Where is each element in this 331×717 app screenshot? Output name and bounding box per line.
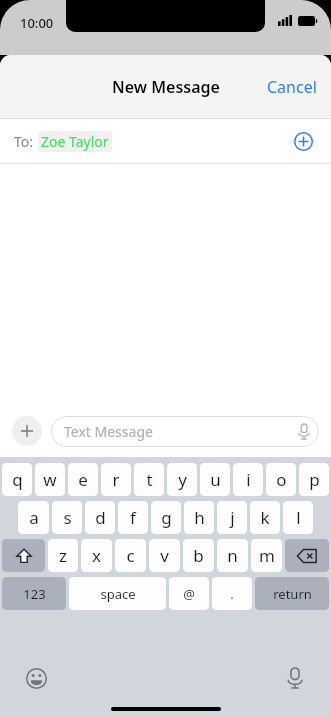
staticText: o: [276, 468, 287, 491]
staticText: l: [296, 506, 301, 529]
button[interactable]: b: [183, 539, 214, 572]
button[interactable]: w: [35, 463, 65, 496]
button[interactable]: Dictation: [279, 662, 311, 694]
button[interactable]: a: [18, 501, 49, 534]
staticText: d: [95, 506, 106, 529]
button[interactable]: Add contact: [289, 127, 317, 155]
staticText: Text Message: [64, 422, 153, 441]
button[interactable]: u: [200, 463, 230, 496]
staticText: Cancel: [267, 76, 317, 98]
staticText: return: [273, 585, 312, 603]
button[interactable]: s: [52, 501, 82, 534]
staticText: t: [146, 468, 153, 491]
staticText: space: [100, 585, 136, 603]
button[interactable]: Shift: [2, 539, 45, 572]
button[interactable]: g: [151, 501, 181, 534]
staticText: h: [194, 506, 205, 529]
staticText: k: [260, 506, 270, 529]
button[interactable]: Emoji: [20, 662, 52, 694]
button[interactable]: To:: [0, 119, 331, 163]
button[interactable]: l: [283, 501, 313, 534]
button[interactable]: 123: [2, 577, 66, 610]
button[interactable]: Backspace: [285, 539, 329, 572]
button[interactable]: t: [134, 463, 164, 496]
button[interactable]: z: [48, 539, 78, 572]
button[interactable]: x: [81, 539, 112, 572]
staticText: @: [183, 585, 195, 603]
button[interactable]: j: [217, 501, 247, 534]
staticText: u: [210, 468, 221, 491]
button[interactable]: h: [184, 501, 214, 534]
button[interactable]: Cancel: [253, 66, 331, 108]
staticText: y: [178, 468, 187, 491]
staticText: a: [29, 506, 39, 529]
button[interactable]: k: [250, 501, 280, 534]
staticText: c: [126, 544, 135, 567]
staticText: Zoe Taylor: [41, 132, 109, 151]
staticText: To:: [14, 132, 34, 151]
button[interactable]: n: [217, 539, 248, 572]
staticText: x: [92, 544, 101, 567]
staticText: q: [12, 468, 23, 491]
button[interactable]: c: [115, 539, 146, 572]
staticText: w: [43, 468, 57, 491]
button[interactable]: return: [255, 577, 329, 610]
staticText: m: [259, 544, 275, 567]
button[interactable]: Attach: [12, 416, 42, 446]
staticText: e: [78, 468, 88, 491]
button[interactable]: .: [212, 577, 252, 610]
button[interactable]: y: [167, 463, 197, 496]
staticText: .: [230, 585, 234, 603]
staticText: 10:00: [20, 14, 54, 32]
staticText: 123: [23, 585, 46, 603]
staticText: j: [230, 506, 235, 529]
staticText: New Message: [112, 76, 220, 98]
button[interactable]: i: [233, 463, 263, 496]
button[interactable]: @: [169, 577, 209, 610]
button[interactable]: p: [299, 463, 329, 496]
staticText: i: [246, 468, 251, 491]
button[interactable]: q: [2, 463, 32, 496]
staticText: v: [160, 544, 169, 567]
staticText: n: [227, 544, 238, 567]
staticText: b: [193, 544, 204, 567]
button[interactable]: o: [266, 463, 296, 496]
button[interactable]: d: [85, 501, 115, 534]
button[interactable]: f: [118, 501, 148, 534]
button[interactable]: space: [69, 577, 166, 610]
button[interactable]: Text Message: [51, 416, 319, 447]
button[interactable]: m: [251, 539, 282, 572]
button[interactable]: v: [149, 539, 180, 572]
button[interactable]: e: [68, 463, 98, 496]
staticText: p: [309, 468, 320, 491]
button[interactable]: r: [101, 463, 131, 496]
staticText: z: [59, 544, 67, 567]
staticText: g: [161, 506, 172, 529]
staticText: s: [63, 506, 72, 529]
staticText: f: [130, 506, 136, 529]
staticText: r: [112, 468, 120, 491]
